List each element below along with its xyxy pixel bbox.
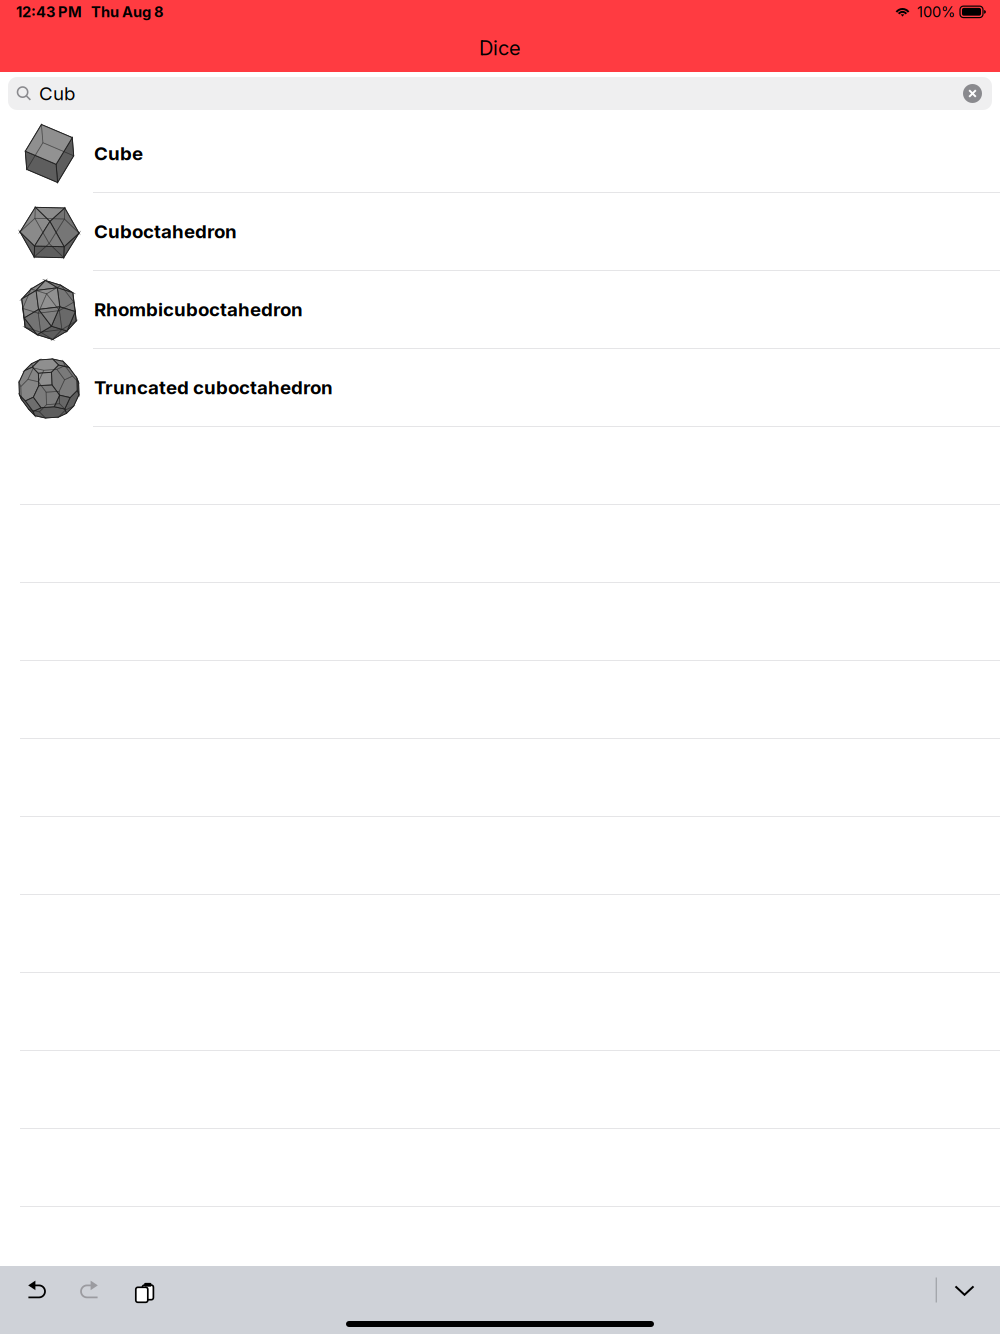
- button[interactable]: Rhombicuboctahedron: [0, 271, 1000, 349]
- staticText: 12:43 PM Thu Aug 8: [16, 3, 164, 21]
- staticText: 100%: [917, 3, 955, 21]
- staticText: Cuboctahedron: [94, 220, 237, 243]
- staticText: Cube: [94, 142, 143, 165]
- staticText: Cub: [39, 82, 75, 105]
- staticText: Dice: [479, 36, 521, 60]
- button[interactable]: Undo: [11, 1270, 63, 1310]
- button[interactable]: Paste: [115, 1270, 167, 1310]
- button[interactable]: Cuboctahedron: [0, 193, 1000, 271]
- staticText: Rhombicuboctahedron: [94, 298, 303, 321]
- button[interactable]: Redo: [63, 1270, 115, 1310]
- button[interactable]: Truncated cuboctahedron: [0, 349, 1000, 427]
- staticText: Truncated cuboctahedron: [94, 376, 333, 399]
- button[interactable]: Hide keyboard: [937, 1270, 992, 1310]
- button[interactable]: Clear search text: [963, 84, 992, 103]
- button[interactable]: Cube: [0, 115, 1000, 193]
